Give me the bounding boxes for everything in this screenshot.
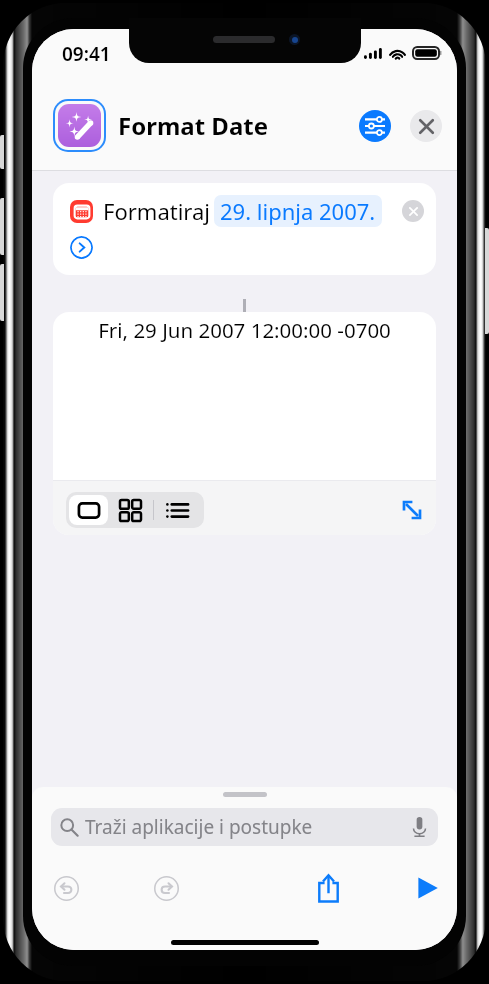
- staticText: 09:41: [62, 41, 111, 67]
- button[interactable]: Undo: [50, 872, 83, 905]
- button[interactable]: Expand details: [70, 236, 93, 259]
- staticText: Formatiraj: [103, 196, 211, 226]
- staticText: Traži aplikacije i postupke: [85, 814, 313, 840]
- button[interactable]: Run: [411, 871, 445, 905]
- button[interactable]: Traži aplikacije i postupke: [51, 808, 438, 846]
- button[interactable]: Grid view: [108, 495, 153, 525]
- staticText: Fri, 29 Jun 2007 12:00:00 -0700: [98, 316, 391, 344]
- button[interactable]: Close: [410, 110, 442, 142]
- button[interactable]: Remove: [402, 200, 424, 222]
- button[interactable]: Share: [311, 871, 345, 905]
- button[interactable]: Shortcut icon: [58, 104, 101, 147]
- button[interactable]: Expand: [399, 497, 425, 523]
- staticText: Format Date: [118, 109, 269, 142]
- button[interactable]: Formatiraj: [53, 183, 436, 275]
- button[interactable]: Redo: [150, 872, 183, 905]
- staticText: 29. lipnja 2007.: [220, 196, 376, 226]
- button[interactable]: Settings: [359, 110, 391, 142]
- button[interactable]: List view: [154, 495, 201, 525]
- button[interactable]: Single view: [69, 495, 108, 525]
